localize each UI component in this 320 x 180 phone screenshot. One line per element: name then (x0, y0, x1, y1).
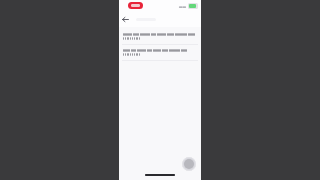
button[interactable]: Assistive touch (182, 157, 196, 171)
button[interactable] (119, 29, 201, 44)
button[interactable]: Back (119, 13, 132, 26)
button[interactable] (119, 45, 201, 60)
